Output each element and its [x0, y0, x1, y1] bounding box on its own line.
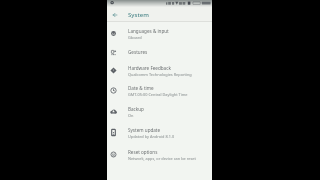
staticText: Gboard [128, 35, 142, 40]
button[interactable]: Gestures [107, 46, 212, 62]
staticText: Reset options [128, 149, 158, 155]
button[interactable]: Backup [107, 103, 212, 124]
button[interactable]: Languages & input [107, 25, 212, 46]
staticText: On [128, 113, 134, 118]
staticText: Languages & input [128, 28, 169, 34]
staticText: System [128, 11, 149, 19]
button[interactable]: Reset options [107, 146, 212, 167]
staticText: Network, apps, or device can be reset [128, 156, 196, 161]
staticText: Updated by Android 8.1.0 [128, 134, 175, 139]
button[interactable]: Date & time [107, 82, 212, 103]
staticText: GMT-05:00 Central Daylight Time [128, 92, 188, 97]
staticText: Gestures [128, 49, 148, 55]
button[interactable]: System update [107, 124, 212, 145]
button[interactable]: Hardware Feedback [107, 62, 212, 83]
staticText: Backup [128, 106, 144, 112]
staticText: Hardware Feedback [128, 65, 171, 71]
staticText: Date & time [128, 85, 154, 91]
staticText: System update [128, 127, 161, 133]
staticText: Qualcomm Technologies Reporting [128, 72, 192, 77]
button[interactable]: Back [108, 8, 122, 22]
